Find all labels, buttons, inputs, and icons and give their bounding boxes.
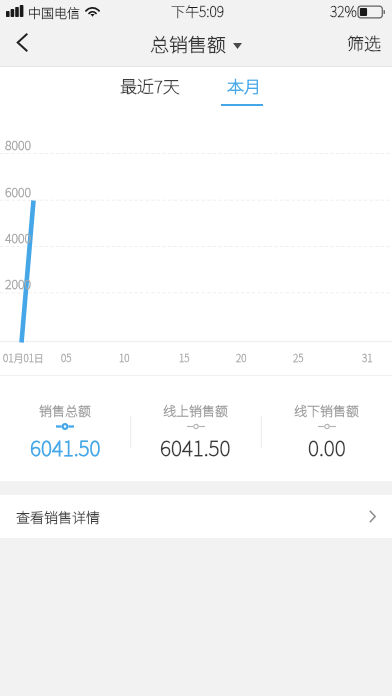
button[interactable]: 销售总额 — [0, 376, 130, 481]
staticText: 01月01日 — [3, 350, 44, 364]
staticText: 下午5:09 — [171, 1, 225, 21]
staticText: 中国电信 — [28, 3, 81, 22]
staticText: 本月 — [227, 73, 261, 98]
staticText: 32% — [330, 1, 357, 21]
button[interactable]: 最近7天 — [104, 67, 196, 109]
staticText: 最近7天 — [120, 73, 180, 98]
staticText: 线上销售额 — [163, 401, 229, 420]
staticText: 查看销售详情 — [16, 507, 100, 527]
staticText: 10 — [119, 350, 130, 364]
button[interactable]: 线上销售额 — [130, 376, 261, 481]
staticText: 15 — [179, 350, 190, 364]
button[interactable]: 查看销售详情 — [0, 495, 392, 538]
staticText: 31 — [362, 350, 373, 364]
staticText: 6041.50 — [160, 432, 231, 462]
staticText: 0.00 — [308, 432, 346, 462]
button[interactable]: 本月 — [196, 67, 288, 109]
staticText: 销售总额 — [39, 401, 92, 420]
button[interactable]: 总销售额 — [150, 30, 242, 58]
staticText: 8000 — [5, 135, 32, 153]
button[interactable]: Back — [0, 26, 44, 66]
button[interactable]: 线下销售额 — [261, 376, 392, 481]
staticText: 05 — [61, 350, 72, 364]
staticText: 线下销售额 — [294, 401, 360, 420]
staticText: 4000 — [5, 228, 32, 246]
staticText: 20 — [236, 350, 247, 364]
staticText: 6000 — [5, 182, 32, 200]
staticText: 筛选 — [347, 30, 381, 55]
staticText: 2000 — [5, 274, 32, 292]
staticText: 总销售额 — [150, 30, 227, 58]
staticText: 6041.50 — [30, 432, 101, 462]
button[interactable]: 筛选 — [336, 26, 392, 66]
staticText: 25 — [293, 350, 304, 364]
